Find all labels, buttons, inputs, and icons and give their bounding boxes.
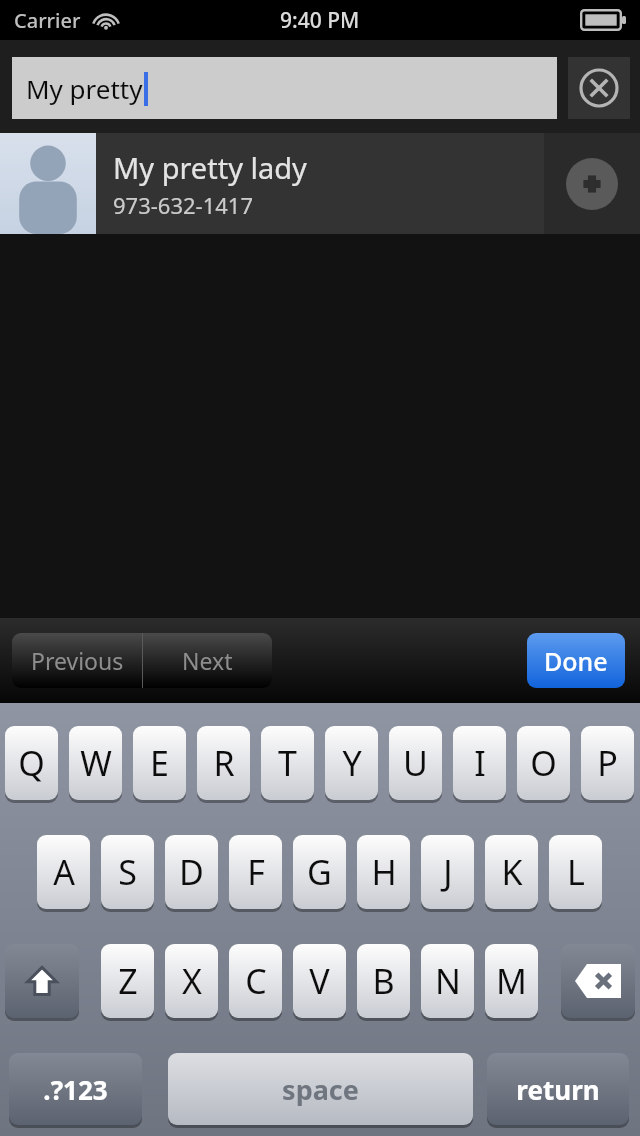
staticText: N: [435, 958, 461, 1004]
button[interactable]: L: [549, 835, 602, 909]
button[interactable]: return: [487, 1053, 629, 1125]
staticText: C: [245, 958, 267, 1004]
button[interactable]: J: [421, 835, 474, 909]
staticText: D: [179, 849, 204, 895]
button[interactable]: .?123: [9, 1053, 142, 1125]
button[interactable]: R: [197, 726, 250, 800]
staticText: Z: [118, 958, 138, 1004]
button[interactable]: T: [261, 726, 314, 800]
button[interactable]: space: [168, 1053, 473, 1125]
button[interactable]: M: [485, 944, 538, 1018]
button[interactable]: Z: [101, 944, 154, 1018]
staticText: return: [516, 1072, 600, 1107]
button[interactable]: Done: [527, 633, 625, 688]
staticText: A: [53, 849, 75, 895]
staticText: 9:40 PM: [280, 6, 360, 35]
button[interactable]: Q: [5, 726, 58, 800]
button[interactable]: H: [357, 835, 410, 909]
button[interactable]: A: [37, 835, 90, 909]
staticText: G: [307, 849, 332, 895]
button[interactable]: B: [357, 944, 410, 1018]
button[interactable]: W: [69, 726, 122, 800]
button[interactable]: Next: [143, 633, 272, 688]
staticText: H: [371, 849, 397, 895]
staticText: Previous: [31, 645, 124, 676]
staticText: My pretty: [26, 71, 143, 106]
staticText: Done: [544, 644, 608, 678]
staticText: B: [372, 958, 395, 1004]
staticText: X: [182, 958, 202, 1004]
staticText: U: [403, 740, 428, 786]
button[interactable]: O: [517, 726, 570, 800]
staticText: L: [567, 849, 585, 895]
staticText: E: [150, 740, 169, 786]
button[interactable]: D: [165, 835, 218, 909]
staticText: S: [118, 849, 137, 895]
staticText: Y: [342, 740, 362, 786]
button[interactable]: P: [581, 726, 634, 800]
button[interactable]: K: [485, 835, 538, 909]
button[interactable]: Clear text: [568, 57, 630, 119]
staticText: Carrier: [14, 7, 81, 34]
staticText: 973-632-1417: [113, 190, 254, 220]
button[interactable]: G: [293, 835, 346, 909]
staticText: K: [501, 849, 523, 895]
staticText: V: [309, 958, 330, 1004]
button[interactable]: U: [389, 726, 442, 800]
button[interactable]: Y: [325, 726, 378, 800]
staticText: P: [597, 740, 618, 786]
button[interactable]: Add contact: [544, 133, 640, 234]
staticText: O: [530, 740, 557, 786]
staticText: My pretty lady: [113, 148, 307, 187]
button[interactable]: F: [229, 835, 282, 909]
button[interactable]: S: [101, 835, 154, 909]
staticText: I: [474, 740, 486, 786]
button[interactable]: I: [453, 726, 506, 800]
button[interactable]: E: [133, 726, 186, 800]
staticText: Next: [182, 645, 233, 676]
button[interactable]: V: [293, 944, 346, 1018]
button[interactable]: [561, 944, 635, 1018]
staticText: M: [496, 958, 527, 1004]
button[interactable]: [5, 944, 79, 1018]
staticText: F: [247, 849, 265, 895]
staticText: R: [213, 740, 235, 786]
button[interactable]: My pretty: [12, 57, 557, 119]
staticText: J: [443, 849, 453, 895]
staticText: W: [80, 740, 112, 786]
button[interactable]: X: [165, 944, 218, 1018]
staticText: space: [282, 1071, 359, 1108]
button[interactable]: C: [229, 944, 282, 1018]
button[interactable]: Previous: [12, 633, 142, 688]
staticText: Q: [18, 740, 45, 786]
button[interactable]: N: [421, 944, 474, 1018]
staticText: T: [278, 740, 297, 786]
staticText: .?123: [43, 1072, 108, 1107]
button[interactable]: My pretty lady: [0, 133, 640, 234]
